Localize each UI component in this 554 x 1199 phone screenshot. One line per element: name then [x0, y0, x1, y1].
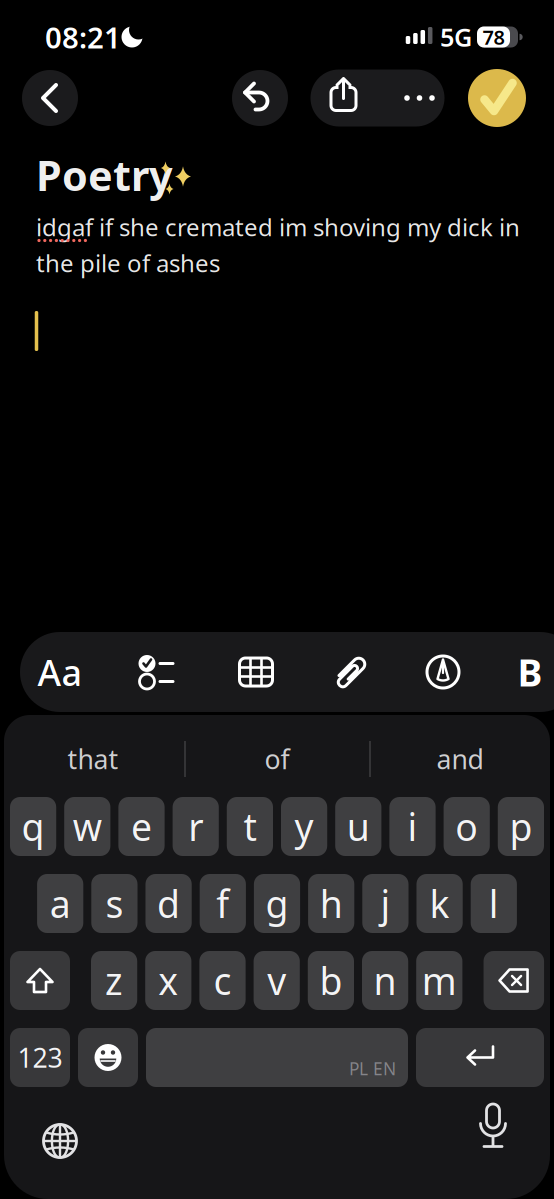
button[interactable]: c [199, 951, 246, 1010]
staticText: m [422, 956, 457, 1005]
button[interactable]: Space [146, 1028, 408, 1087]
staticText: v [267, 956, 286, 1005]
staticText: Aa [37, 648, 82, 696]
staticText: r [188, 802, 203, 851]
button[interactable]: j [362, 874, 408, 933]
staticText: a [50, 879, 71, 928]
staticText: of [264, 741, 289, 777]
staticText: b [319, 956, 342, 1005]
staticText: p [509, 802, 532, 851]
staticText: 08:21 [45, 17, 121, 56]
staticText: i [407, 802, 417, 851]
button[interactable]: n [362, 951, 408, 1010]
button[interactable]: p [498, 797, 544, 856]
staticText: q [22, 802, 45, 851]
button[interactable]: 123 [10, 1028, 70, 1087]
button[interactable]: Back [22, 70, 78, 126]
button[interactable]: Attach [319, 640, 383, 704]
button[interactable]: of [192, 737, 362, 781]
staticText: 5G [440, 20, 472, 54]
button[interactable]: Table [224, 640, 288, 704]
button[interactable]: e [118, 797, 165, 856]
button[interactable]: u [335, 797, 381, 856]
button[interactable]: z [91, 951, 137, 1010]
staticText: that [67, 741, 118, 777]
button[interactable]: Dictate [465, 1113, 521, 1169]
staticText: s [105, 879, 123, 928]
button[interactable]: l [471, 874, 517, 933]
button[interactable]: y [281, 797, 327, 856]
staticText: w [73, 802, 102, 851]
button[interactable]: Next keyboard [32, 1113, 88, 1169]
button[interactable]: Delete [483, 951, 544, 1010]
staticText: idgaf if she cremated im shoving my dick… [36, 211, 520, 243]
button[interactable]: Format [28, 640, 92, 704]
staticText: u [347, 802, 370, 851]
staticText: y [295, 802, 314, 851]
button[interactable]: s [91, 874, 137, 933]
button[interactable]: Markup [411, 640, 475, 704]
button[interactable]: and [375, 737, 545, 781]
button[interactable]: More [377, 69, 444, 126]
button[interactable]: Undo [232, 70, 288, 126]
staticText: and [436, 741, 483, 777]
button[interactable]: a [37, 874, 83, 933]
button[interactable]: Checklist [125, 640, 189, 704]
button[interactable]: Bold [508, 640, 552, 704]
staticText: e [131, 802, 152, 851]
staticText: z [105, 956, 123, 1005]
button[interactable]: d [145, 874, 192, 933]
button[interactable]: o [444, 797, 490, 856]
staticText: Poetry [36, 148, 173, 202]
button[interactable]: g [254, 874, 300, 933]
button[interactable]: k [416, 874, 463, 933]
button[interactable]: x [145, 951, 191, 1010]
button[interactable]: w [64, 797, 110, 856]
staticText: n [374, 956, 397, 1005]
staticText: x [158, 956, 178, 1005]
button[interactable]: q [10, 797, 56, 856]
staticText: k [430, 879, 450, 928]
staticText: PL EN [349, 1057, 396, 1080]
button[interactable]: t [227, 797, 273, 856]
staticText: c [213, 956, 231, 1005]
staticText: l [489, 879, 499, 928]
button[interactable]: b [308, 951, 354, 1010]
button[interactable]: h [308, 874, 354, 933]
button[interactable]: i [389, 797, 436, 856]
button[interactable]: that [8, 737, 178, 781]
staticText: d [157, 879, 180, 928]
staticText: the pile of ashes [36, 247, 220, 279]
staticText: 123 [17, 1040, 62, 1075]
staticText: j [380, 879, 390, 928]
button[interactable]: Done [468, 69, 526, 127]
button[interactable]: m [416, 951, 462, 1010]
button[interactable]: Shift [10, 951, 70, 1010]
staticText: B [517, 647, 542, 697]
button[interactable]: r [173, 797, 219, 856]
staticText: t [243, 802, 256, 851]
staticText: f [216, 879, 229, 928]
staticText: h [320, 879, 343, 928]
staticText: g [265, 879, 288, 928]
button[interactable]: v [254, 951, 300, 1010]
button[interactable]: Return [416, 1028, 544, 1087]
button[interactable]: Emoji [78, 1028, 138, 1087]
button[interactable]: f [200, 874, 246, 933]
staticText: 78 [482, 24, 504, 50]
button[interactable]: Share [310, 69, 377, 126]
staticText: o [455, 802, 478, 851]
